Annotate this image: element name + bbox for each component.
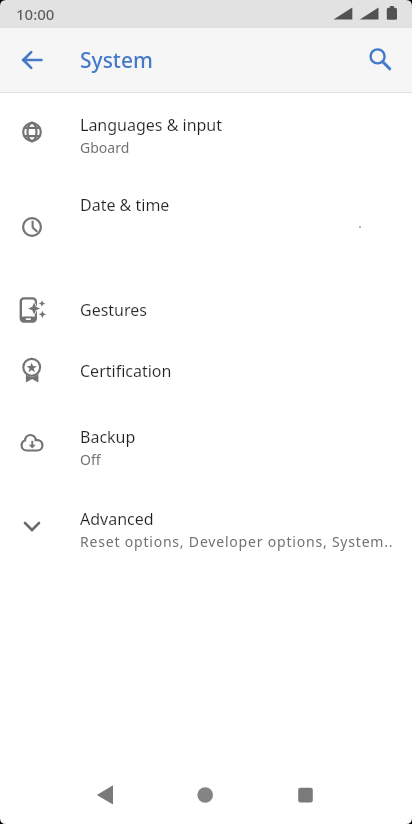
button[interactable]: Certification [0,343,412,399]
button[interactable] [81,772,129,820]
staticText: Date & time [80,194,170,216]
button[interactable]: Date & time [0,190,412,262]
button[interactable] [181,772,229,820]
staticText: 10:00 [16,4,55,24]
staticText: System [80,46,153,75]
button[interactable]: Languages & input [0,96,412,168]
staticText: Reset options, Developer options, System… [80,532,394,551]
button[interactable] [281,772,329,820]
button[interactable]: Gestures [0,282,412,338]
staticText: Gboard [80,138,130,157]
staticText: Advanced [80,508,154,530]
button[interactable] [8,36,56,84]
button[interactable] [356,36,404,84]
button[interactable]: Backup [0,408,412,480]
staticText: Backup [80,426,136,448]
button[interactable]: Advanced [0,490,412,562]
staticText: Off [80,450,101,469]
staticText: Certification [80,360,172,382]
staticText: Languages & input [80,114,223,136]
staticText: Gestures [80,299,147,321]
